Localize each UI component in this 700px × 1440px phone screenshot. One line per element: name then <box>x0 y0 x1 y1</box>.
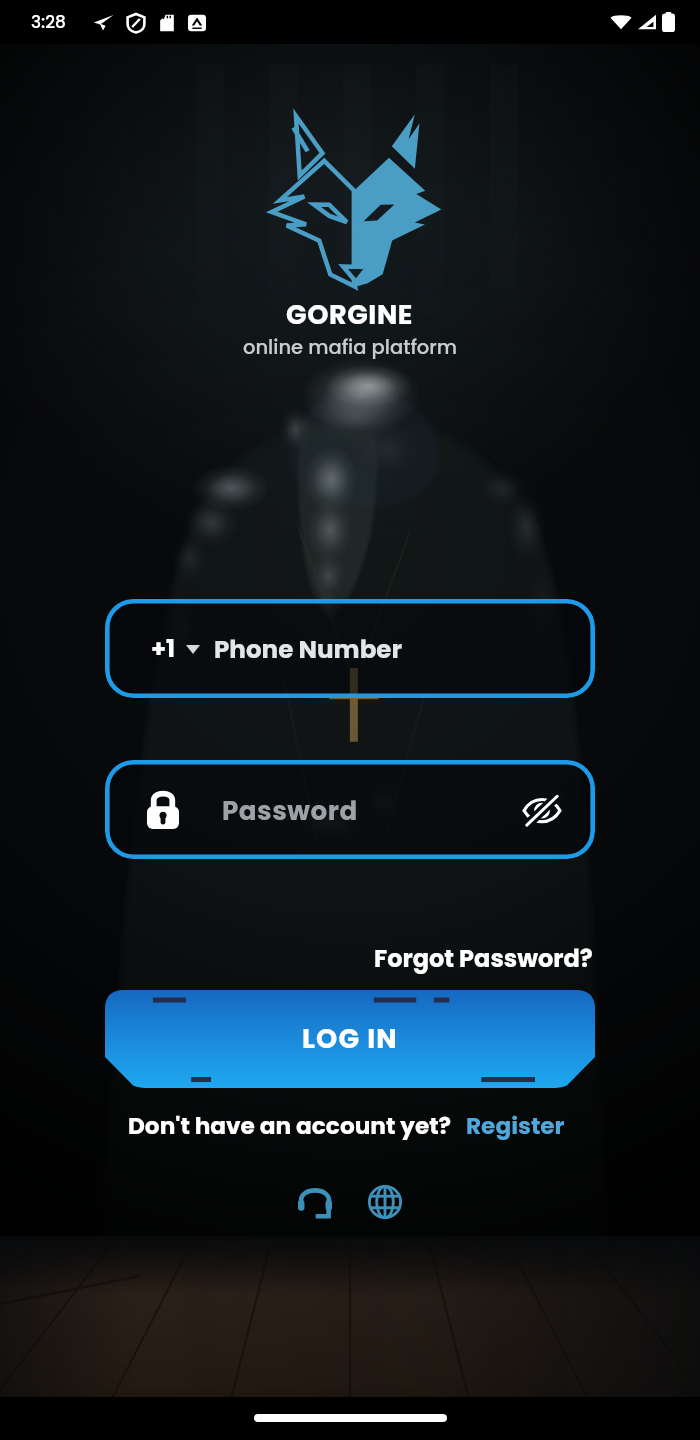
staticText: Phone Number <box>214 632 403 666</box>
button[interactable]: Support <box>291 1178 339 1226</box>
staticText: Register <box>466 1110 565 1142</box>
staticText: 3:28 <box>31 10 66 34</box>
staticText: Don't have an account yet? <box>128 1110 452 1142</box>
button[interactable]: Show password <box>519 787 565 833</box>
button[interactable]: Register <box>466 1110 565 1142</box>
staticText: +1 <box>151 632 176 666</box>
staticText: online mafia platform <box>243 334 458 361</box>
button[interactable]: LOG IN <box>105 990 595 1088</box>
staticText: Password <box>222 792 358 829</box>
staticText: LOG IN <box>302 1020 398 1058</box>
button[interactable]: Language <box>361 1178 409 1226</box>
button[interactable]: +1 <box>105 599 595 698</box>
button[interactable]: Password <box>105 760 595 859</box>
button[interactable]: Forgot Password? <box>372 938 595 980</box>
staticText: GORGINE <box>286 296 414 334</box>
staticText: Forgot Password? <box>374 942 593 976</box>
